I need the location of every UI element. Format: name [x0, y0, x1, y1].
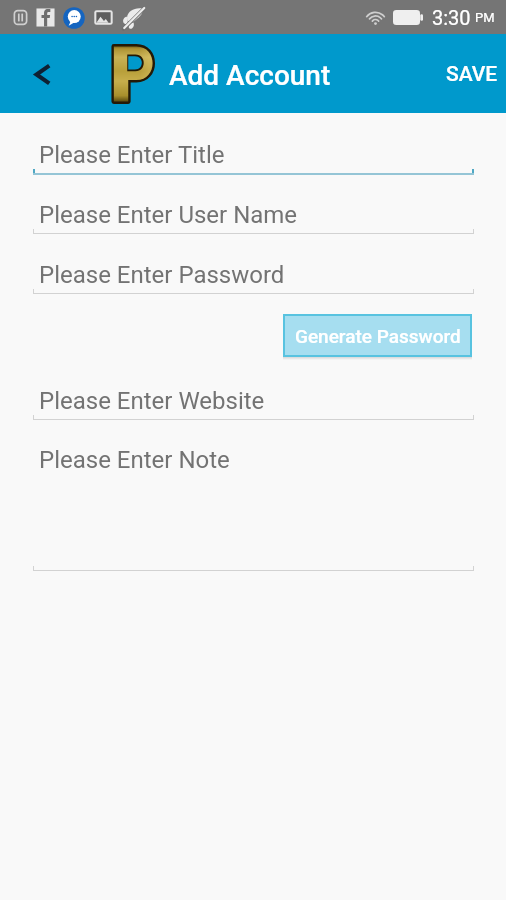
staticText: Generate Password: [295, 325, 461, 347]
button[interactable]: Generate Password: [283, 314, 472, 357]
staticText: Please Enter Note: [39, 446, 230, 474]
button[interactable]: SAVE: [428, 48, 506, 99]
staticText: Please Enter Website: [39, 387, 265, 415]
button[interactable]: Back: [26, 58, 58, 90]
staticText: Please Enter User Name: [39, 201, 298, 229]
button[interactable]: Please Enter Note: [33, 442, 474, 571]
staticText: SAVE: [446, 62, 498, 87]
button[interactable]: Please Enter Title: [33, 137, 474, 175]
staticText: 3:30: [432, 6, 471, 29]
button[interactable]: Please Enter Website: [33, 383, 474, 420]
staticText: Please Enter Password: [39, 261, 285, 289]
button[interactable]: Please Enter Password: [33, 257, 474, 294]
staticText: Please Enter Title: [39, 141, 225, 169]
staticText: PM: [475, 10, 495, 25]
button[interactable]: Please Enter User Name: [33, 197, 474, 234]
staticText: Add Account: [169, 59, 331, 92]
